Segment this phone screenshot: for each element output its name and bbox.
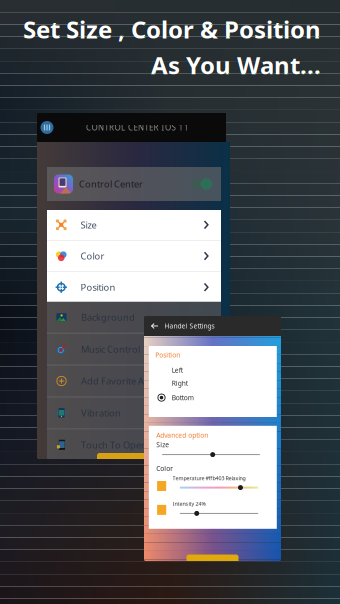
- staticText: Right: [172, 379, 188, 388]
- button[interactable]: Back: [144, 323, 158, 329]
- button[interactable]: Control Center: [47, 167, 221, 201]
- staticText: Bottom: [172, 393, 194, 402]
- staticText: As You Want...: [151, 49, 321, 81]
- staticText: Color: [156, 464, 173, 473]
- button[interactable]: Color: [47, 241, 221, 271]
- staticText: CONTROL CENTER IOS 11: [86, 122, 189, 133]
- button[interactable]: Vibration: [47, 397, 221, 428]
- button[interactable]: Bottom: [149, 391, 277, 404]
- staticText: Position: [80, 281, 115, 293]
- button[interactable]: Left: [149, 364, 277, 377]
- button[interactable]: Touch To Open: [47, 429, 221, 460]
- staticText: Position: [155, 350, 180, 359]
- staticText: Temperature #ffb403 Relaxing: [172, 475, 245, 482]
- button[interactable]: Right: [149, 377, 277, 390]
- staticText: Background: [81, 311, 135, 323]
- staticText: Color: [80, 250, 104, 262]
- staticText: Set Size , Color & Position: [23, 13, 321, 45]
- staticText: Vibration: [81, 407, 121, 419]
- button[interactable]: Add Favorite App: [47, 365, 221, 397]
- button[interactable]: Background: [47, 302, 221, 333]
- staticText: Handel Settings: [164, 322, 214, 330]
- staticText: Advanced option: [156, 431, 208, 440]
- staticText: Left: [172, 366, 183, 375]
- button[interactable]: Position: [47, 272, 221, 302]
- staticText: Music Control: [81, 343, 140, 355]
- staticText: Touch To Open: [81, 439, 147, 451]
- staticText: Add Favorite App: [81, 375, 156, 387]
- button[interactable]: Music Control: [47, 333, 221, 365]
- staticText: Intensity 24%: [172, 500, 205, 507]
- staticText: Control Center: [79, 178, 143, 190]
- button[interactable]: Size: [47, 210, 221, 240]
- staticText: Size: [80, 219, 96, 231]
- staticText: Size: [156, 440, 169, 449]
